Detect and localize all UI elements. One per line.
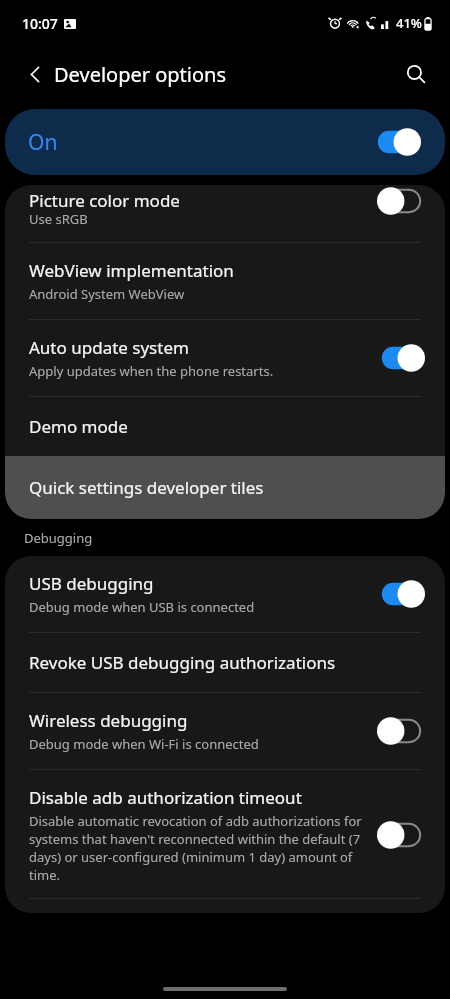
button[interactable]: Off <box>377 821 425 849</box>
button[interactable]: Search <box>394 52 438 96</box>
staticText: USB debugging <box>29 572 154 595</box>
staticText: Use sRGB <box>29 210 88 228</box>
button[interactable]: WebView implementation <box>5 243 445 319</box>
staticText: Revoke USB debugging authorizations <box>29 651 336 674</box>
button[interactable]: Quick settings developer tiles <box>5 456 445 519</box>
button[interactable]: Disable adb authorization timeout <box>5 770 445 898</box>
button[interactable]: Picture color mode <box>5 185 445 242</box>
button[interactable]: Off <box>377 187 425 215</box>
staticText: On <box>28 128 58 157</box>
button[interactable]: Wireless debugging <box>5 693 445 769</box>
staticText: WebView implementation <box>29 259 234 282</box>
staticText: 41% <box>396 14 422 32</box>
staticText: Quick settings developer tiles <box>29 476 264 499</box>
staticText: Developer options <box>54 61 227 88</box>
staticText: 10:07 <box>22 14 58 33</box>
button[interactable]: On <box>373 128 421 156</box>
button[interactable]: On <box>377 580 425 608</box>
button[interactable]: On <box>377 344 425 372</box>
staticText: Apply updates when the phone restarts. <box>29 362 274 380</box>
staticText: Auto update system <box>29 336 189 359</box>
button[interactable]: Off <box>377 717 425 745</box>
staticText: Debug mode when Wi-Fi is connected <box>29 735 259 753</box>
button[interactable]: Back <box>14 53 56 95</box>
button[interactable]: Demo mode <box>5 397 445 456</box>
staticText: Demo mode <box>29 415 128 438</box>
staticText: Disable adb authorization timeout <box>29 786 302 809</box>
button[interactable]: Auto update system <box>5 320 445 396</box>
staticText: Debug mode when USB is connected <box>29 598 255 616</box>
staticText: Disable automatic revocation of adb auth… <box>29 812 367 884</box>
button[interactable]: USB debugging <box>5 556 445 632</box>
staticText: Picture color mode <box>29 189 180 211</box>
staticText: Wireless debugging <box>29 709 188 732</box>
button[interactable]: On <box>5 109 445 175</box>
staticText: Debugging <box>24 529 93 547</box>
button[interactable]: Revoke USB debugging authorizations <box>5 633 445 692</box>
staticText: Android System WebView <box>29 285 185 303</box>
